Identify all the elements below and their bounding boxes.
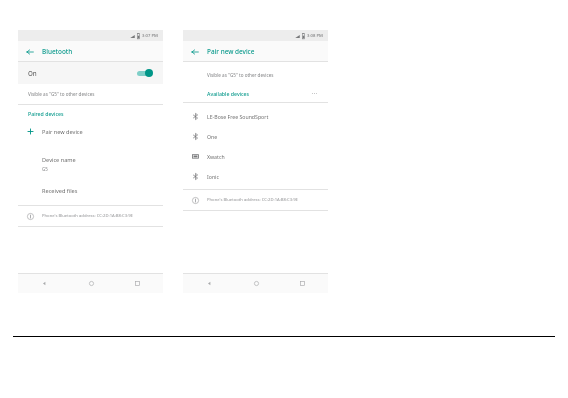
staticText: One <box>207 133 218 140</box>
staticText: Visible as "G5" to other devices <box>207 72 274 78</box>
staticText: Visible as "G5" to other devices <box>28 91 95 97</box>
staticText: Device name <box>42 156 76 164</box>
staticText: 3:08 PM <box>307 33 323 39</box>
button[interactable]: Device name <box>18 153 163 175</box>
button[interactable]: Received files <box>18 182 163 199</box>
button[interactable]: Back <box>183 41 207 62</box>
button[interactable]: Visible as "G5" to other devices <box>18 84 163 104</box>
staticText: Ionic <box>207 173 219 180</box>
staticText: Phone's Bluetooth address: CC:2D:1A:B8:C… <box>207 197 298 203</box>
button[interactable]: Xwatch <box>183 146 328 166</box>
staticText: LE-Bose Free SoundSport <box>207 113 269 120</box>
button[interactable]: Home <box>83 275 99 291</box>
button[interactable]: Back <box>36 275 52 291</box>
button[interactable]: Back <box>201 275 217 291</box>
button[interactable]: Recents <box>294 275 310 291</box>
button[interactable]: Home <box>248 275 264 291</box>
button[interactable]: Pair new device <box>18 122 163 141</box>
button[interactable]: Ionic <box>183 166 328 186</box>
staticText: Available devices <box>207 90 250 97</box>
staticText: Pair new device <box>207 47 255 56</box>
staticText: Received files <box>42 187 78 195</box>
button[interactable]: One <box>183 126 328 146</box>
staticText: Xwatch <box>207 153 225 160</box>
button[interactable]: Available devices <box>183 84 328 102</box>
staticText: Phone's Bluetooth address: CC:2D:1A:B8:C… <box>42 213 133 219</box>
button[interactable]: LE-Bose Free SoundSport <box>183 106 328 126</box>
button[interactable]: Back <box>18 41 42 62</box>
staticText: Paired devices <box>28 110 64 117</box>
staticText: Pair new device <box>42 128 83 136</box>
staticText: G5 <box>42 166 48 172</box>
staticText: 3:07 PM <box>142 33 158 39</box>
button[interactable]: Recents <box>129 275 145 291</box>
staticText: Bluetooth <box>42 47 73 56</box>
button[interactable]: Bluetooth on <box>136 68 153 78</box>
button[interactable]: On <box>18 62 163 84</box>
staticText: On <box>28 69 37 77</box>
